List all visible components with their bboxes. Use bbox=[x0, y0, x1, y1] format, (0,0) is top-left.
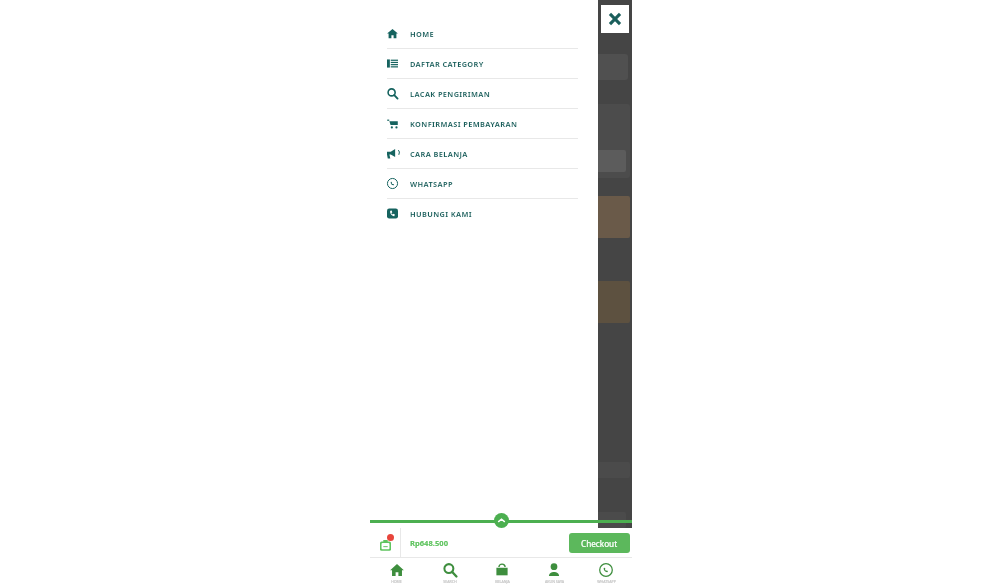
button[interactable]: Cart bbox=[370, 528, 400, 557]
button[interactable]: AKUN SAYA bbox=[528, 558, 580, 585]
staticText: WHATSAPP bbox=[410, 179, 453, 189]
staticText: HUBUNGI KAMI bbox=[410, 209, 472, 219]
button[interactable]: Close menu bbox=[601, 5, 629, 33]
staticText: SEARCH bbox=[443, 579, 457, 584]
staticText: CARA BELANJA bbox=[410, 149, 468, 159]
staticText: AKUN SAYA bbox=[545, 579, 564, 584]
staticText: KONFIRMASI PEMBAYARAN bbox=[410, 119, 518, 129]
button[interactable]: WHATSAPP bbox=[387, 169, 578, 198]
staticText: Rp648.500 bbox=[410, 538, 569, 548]
button[interactable]: CARA BELANJA bbox=[387, 139, 578, 168]
button[interactable]: LACAK PENGIRIMAN bbox=[387, 79, 578, 108]
staticText: Checkout bbox=[581, 538, 618, 549]
button[interactable]: Checkout bbox=[569, 533, 630, 553]
staticText: HOME bbox=[410, 29, 435, 39]
staticText: BELANJA bbox=[495, 579, 510, 584]
button[interactable]: Expand cart bbox=[494, 513, 509, 528]
staticText: HOME bbox=[391, 579, 402, 584]
staticText: DAFTAR CATEGORY bbox=[410, 59, 484, 69]
staticText: WHATSAPP bbox=[597, 579, 616, 584]
button[interactable]: WHATSAPP bbox=[580, 558, 632, 585]
button[interactable]: DAFTAR CATEGORY bbox=[387, 49, 578, 78]
button[interactable]: SEARCH bbox=[423, 558, 476, 585]
button[interactable]: KONFIRMASI PEMBAYARAN bbox=[387, 109, 578, 138]
button[interactable]: HOME bbox=[370, 558, 423, 585]
staticText: LACAK PENGIRIMAN bbox=[410, 89, 491, 99]
button[interactable]: HUBUNGI KAMI bbox=[387, 199, 578, 228]
button[interactable]: BELANJA bbox=[476, 558, 528, 585]
button[interactable]: HOME bbox=[387, 19, 578, 48]
